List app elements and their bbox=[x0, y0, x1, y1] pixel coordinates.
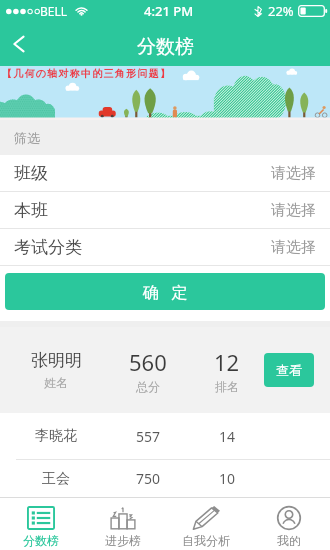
staticText: 请选择 bbox=[271, 164, 316, 183]
button[interactable]: 查看 bbox=[264, 353, 314, 387]
button[interactable]: 班级 bbox=[0, 155, 330, 192]
button[interactable]: 自我分析 bbox=[164, 498, 247, 550]
staticText: 750 bbox=[108, 469, 188, 488]
button[interactable]: 分数榜 bbox=[0, 498, 82, 550]
staticText: 12 bbox=[214, 347, 240, 377]
staticText: 本班 bbox=[14, 200, 48, 221]
staticText: 筛选 bbox=[14, 130, 40, 146]
button[interactable]: 本班 bbox=[0, 192, 330, 229]
staticText: 10 bbox=[187, 469, 267, 488]
staticText: 我的 bbox=[277, 533, 301, 548]
staticText: 姓名 bbox=[44, 375, 68, 390]
button[interactable]: 王会 bbox=[0, 460, 330, 497]
staticText: 【几何の轴对称中的三角形问题】 bbox=[2, 67, 171, 80]
staticText: 确 定 bbox=[143, 281, 190, 303]
button[interactable]: Back bbox=[0, 22, 36, 66]
staticText: 王会 bbox=[16, 470, 96, 488]
staticText: 22% bbox=[268, 2, 294, 20]
staticText: 查看 bbox=[276, 362, 302, 378]
staticText: 进步榜 bbox=[105, 533, 141, 548]
staticText: 557 bbox=[108, 427, 188, 446]
staticText: 分数榜 bbox=[137, 35, 194, 59]
staticText: 4:21 PM bbox=[144, 2, 194, 20]
staticText: 14 bbox=[187, 427, 267, 446]
staticText: 李晓花 bbox=[16, 427, 96, 445]
staticText: 考试分类 bbox=[14, 237, 82, 258]
staticText: BELL bbox=[40, 3, 68, 19]
button[interactable]: 确 定 bbox=[5, 273, 325, 310]
button[interactable]: 我的 bbox=[247, 498, 330, 550]
staticText: 分数榜 bbox=[23, 533, 59, 548]
button[interactable]: 李晓花 bbox=[0, 413, 330, 460]
staticText: 张明明 bbox=[31, 350, 82, 371]
staticText: 班级 bbox=[14, 163, 48, 184]
button[interactable]: 考试分类 bbox=[0, 229, 330, 266]
staticText: 560 bbox=[129, 347, 167, 377]
staticText: 请选择 bbox=[271, 238, 316, 257]
button[interactable]: 进步榜 bbox=[82, 498, 164, 550]
staticText: 请选择 bbox=[271, 201, 316, 220]
staticText: 总分 bbox=[136, 379, 160, 394]
staticText: 排名 bbox=[215, 379, 239, 394]
staticText: 自我分析 bbox=[182, 533, 230, 548]
